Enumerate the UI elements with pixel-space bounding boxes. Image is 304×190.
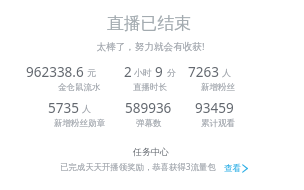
staticText: 9 [155, 63, 163, 81]
button[interactable]: 任务中心 [0, 142, 303, 178]
staticText: 2 [124, 63, 132, 81]
staticText: 分 [167, 67, 176, 78]
staticText: 金仓鼠流水 [58, 82, 101, 93]
staticText: 新增粉丝勋章 [54, 118, 105, 129]
staticText: 直播时长 [133, 82, 167, 93]
staticText: 人 [82, 103, 91, 114]
staticText: 新增粉丝 [201, 82, 235, 93]
staticText: 直播已结束 [107, 13, 191, 34]
staticText: 962338.6 [26, 63, 84, 81]
staticText: 元 [87, 67, 96, 78]
staticText: 已完成天天开播领奖励，恭喜获得3流量包 [60, 161, 216, 172]
staticText: 任务中心 [133, 146, 169, 157]
staticText: 小时 [134, 67, 152, 78]
staticText: 人 [222, 67, 231, 78]
staticText: 93459 [195, 99, 234, 117]
button[interactable]: 查看任务中心 [224, 163, 248, 174]
staticText: 累计观看 [201, 118, 235, 129]
staticText: 弹幕数 [136, 118, 162, 129]
staticText: 589936 [125, 99, 172, 117]
staticText: 7263 [188, 63, 219, 81]
staticText: 查看 [224, 163, 241, 174]
staticText: 太棒了，努力就会有收获! [96, 40, 205, 53]
staticText: 5735 [48, 99, 79, 117]
